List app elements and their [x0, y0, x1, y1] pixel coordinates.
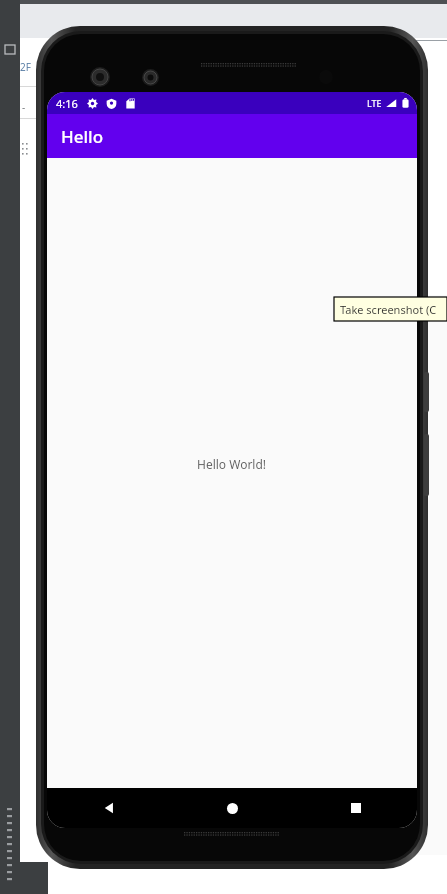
staticText: LTE	[367, 97, 382, 109]
staticText: Hello	[61, 125, 104, 148]
staticText: Take screenshot (C	[340, 302, 437, 317]
staticText: 4:16	[56, 96, 78, 111]
button[interactable]: Back	[47, 788, 171, 828]
staticText: 2F	[20, 60, 31, 74]
staticText: E	[356, 82, 362, 94]
staticText: -	[22, 100, 26, 114]
button[interactable]: Recent apps	[294, 788, 417, 828]
staticText: Hello World!	[197, 456, 267, 472]
button[interactable]: Hello	[47, 114, 417, 158]
staticText: E	[356, 108, 362, 120]
button[interactable]: Home	[171, 788, 294, 828]
